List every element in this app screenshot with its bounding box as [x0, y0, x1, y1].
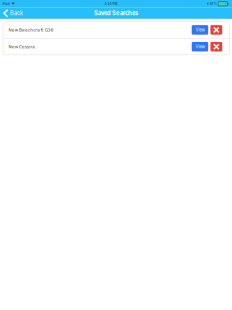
staticText: View	[195, 44, 204, 49]
staticText: Saved Searches	[94, 10, 138, 17]
button[interactable]: Delete	[210, 25, 222, 35]
staticText: New Cessna	[9, 44, 35, 49]
staticText: New Beechcraft G36	[9, 27, 54, 32]
staticText: 87%	[210, 2, 217, 6]
staticText: 4:34 PM	[104, 2, 117, 6]
button[interactable]: View	[192, 42, 208, 51]
staticText: Back	[10, 10, 23, 17]
staticText: iPad	[2, 2, 9, 6]
button[interactable]: View	[192, 25, 208, 35]
button[interactable]: Back	[0, 8, 26, 18]
button[interactable]: Delete	[210, 42, 222, 51]
staticText: View	[195, 27, 204, 32]
